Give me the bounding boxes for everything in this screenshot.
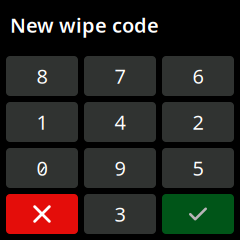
button[interactable]: 1 [6, 102, 78, 142]
button[interactable]: 0 [6, 148, 78, 188]
button[interactable]: 7 [84, 56, 156, 96]
button[interactable]: 8 [6, 56, 78, 96]
button[interactable]: Confirm [162, 194, 234, 234]
staticText: 0 [36, 155, 47, 181]
staticText: 8 [36, 63, 47, 89]
staticText: 5 [192, 155, 203, 181]
button[interactable]: 9 [84, 148, 156, 188]
button[interactable]: 4 [84, 102, 156, 142]
staticText: 6 [192, 63, 203, 89]
button[interactable]: 6 [162, 56, 234, 96]
staticText: New wipe code [10, 12, 159, 38]
button[interactable]: 3 [84, 194, 156, 234]
button[interactable]: 2 [162, 102, 234, 142]
staticText: 7 [114, 63, 125, 89]
staticText: 1 [36, 109, 47, 135]
staticText: 2 [192, 109, 203, 135]
button[interactable]: Cancel [6, 194, 78, 234]
staticText: 4 [114, 109, 125, 135]
button[interactable]: 5 [162, 148, 234, 188]
staticText: 9 [114, 155, 125, 181]
staticText: 3 [114, 201, 125, 227]
